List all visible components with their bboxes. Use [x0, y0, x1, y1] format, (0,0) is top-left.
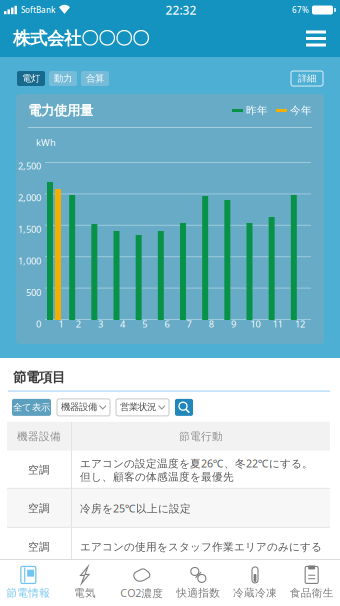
staticText: 合算 — [86, 73, 104, 84]
staticText: 電力使用量 — [28, 102, 93, 119]
staticText: 機器設備 — [61, 401, 96, 414]
button[interactable]: 電灯 — [17, 71, 45, 86]
staticText: 2 — [76, 318, 81, 330]
staticText: CO2濃度 — [120, 586, 163, 600]
button[interactable]: 機器設備 — [57, 399, 110, 416]
staticText: エアコンの設定温度を夏26℃、冬22℃にする。但し、顧客の体感温度を最優先 — [80, 456, 313, 483]
button[interactable]: 食品衛生 — [283, 559, 340, 606]
staticText: 節電項目 — [13, 369, 65, 385]
staticText: 電気 — [74, 586, 96, 599]
staticText: 2,500 — [18, 160, 41, 172]
staticText: 0 — [36, 318, 41, 330]
staticText: 営業状況 — [120, 401, 155, 414]
staticText: 5 — [142, 318, 147, 330]
staticText: 12 — [295, 318, 305, 330]
button[interactable]: 電気 — [57, 559, 113, 606]
staticText: 1,000 — [18, 255, 41, 267]
staticText: 電灯 — [22, 73, 40, 84]
button[interactable]: 合算 — [81, 71, 109, 86]
staticText: 11 — [273, 318, 283, 330]
staticText: 2,000 — [18, 191, 41, 204]
button[interactable]: メニュー — [299, 20, 333, 57]
staticText: 7 — [187, 318, 192, 330]
button[interactable]: 検索 — [175, 399, 193, 416]
button[interactable]: 営業状況 — [116, 399, 169, 416]
staticText: 3 — [98, 318, 103, 330]
staticText: 22:32 — [165, 2, 196, 18]
staticText: 冷房を25℃以上に設定 — [80, 501, 191, 515]
staticText: 節電情報 — [6, 586, 50, 599]
staticText: 詳細 — [298, 73, 316, 84]
button[interactable]: 快適指数 — [170, 559, 227, 606]
staticText: 1,500 — [18, 223, 41, 235]
button[interactable]: 全て表示 — [12, 399, 51, 416]
staticText: 株式会社〇〇〇〇 — [13, 28, 149, 49]
staticText: 1 — [59, 318, 64, 330]
button[interactable]: 節電情報 — [0, 559, 57, 606]
staticText: 10 — [251, 318, 261, 330]
staticText: 6 — [164, 318, 169, 330]
staticText: 今年 — [290, 104, 312, 117]
staticText: エアコンの使用をスタッフ作業エリアのみにする — [80, 540, 322, 553]
button[interactable]: 詳細 — [291, 71, 323, 86]
button[interactable]: CO2濃度 — [113, 559, 170, 606]
staticText: 冷蔵冷凍 — [233, 586, 277, 599]
staticText: 動力 — [54, 73, 72, 84]
staticText: 機器設備 — [17, 430, 61, 443]
staticText: 500 — [26, 286, 41, 299]
staticText: 空調 — [28, 463, 50, 476]
staticText: 空調 — [28, 502, 50, 515]
staticText: 9 — [231, 318, 236, 330]
staticText: kWh — [36, 136, 56, 149]
staticText: 空調 — [28, 540, 50, 553]
staticText: 快適指数 — [176, 586, 220, 599]
staticText: 全て表示 — [13, 402, 50, 413]
staticText: 昨年 — [246, 104, 268, 117]
button[interactable]: 動力 — [49, 71, 77, 86]
staticText: SoftBank — [21, 5, 55, 15]
staticText: 8 — [209, 318, 214, 330]
staticText: 食品衛生 — [290, 586, 334, 599]
button[interactable]: 冷蔵冷凍 — [227, 559, 283, 606]
staticText: 節電行動 — [179, 430, 223, 443]
staticText: 67% — [292, 5, 309, 15]
staticText: 4 — [120, 318, 125, 330]
